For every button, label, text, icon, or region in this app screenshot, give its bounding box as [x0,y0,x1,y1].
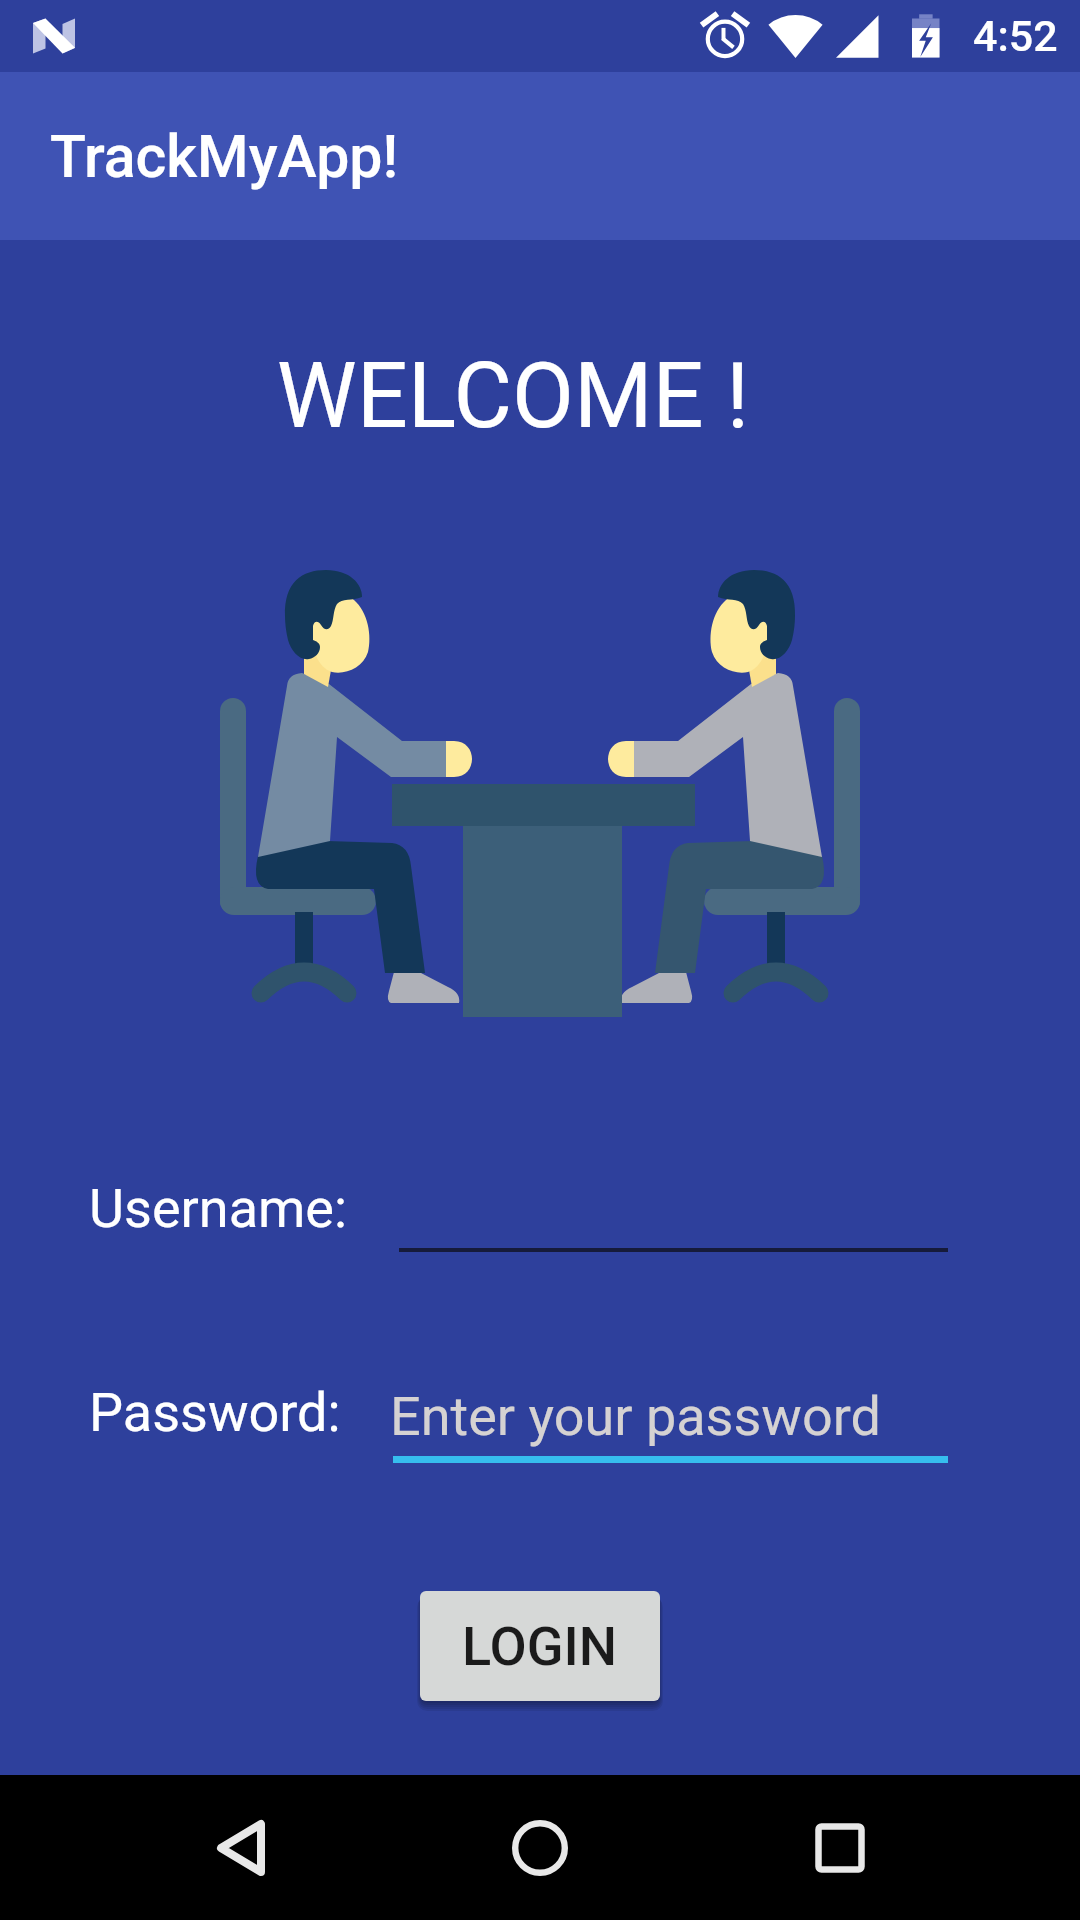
staticText: Enter your password [390,1385,881,1448]
button[interactable]: Recents [740,1775,940,1920]
staticText: Password: [89,1381,341,1444]
button[interactable]: Back [141,1775,341,1920]
button[interactable]: Enter your password [393,1380,948,1463]
staticText: LOGIN [462,1615,618,1678]
staticText: WELCOME ! [0,344,1053,449]
button[interactable]: Home [440,1775,640,1920]
staticText: 4:52 [973,11,1058,61]
staticText: Username: [89,1177,348,1240]
button[interactable]: LOGIN [420,1591,660,1701]
staticText: TrackMyApp! [50,122,399,191]
button[interactable]: Username input field [399,1176,948,1252]
